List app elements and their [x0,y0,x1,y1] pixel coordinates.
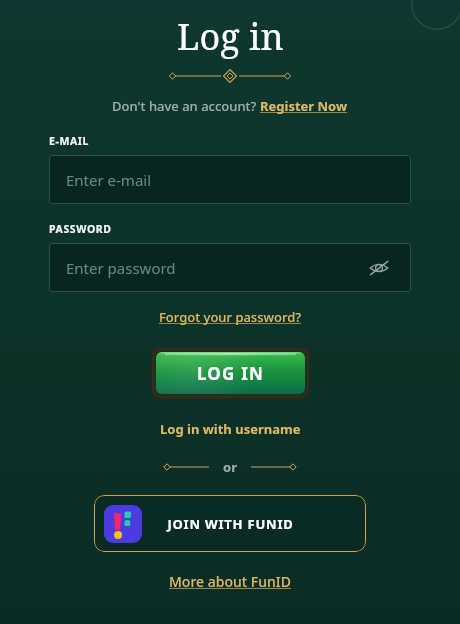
button[interactable]: Forgot your password? [155,304,306,330]
staticText: Register Now [260,97,348,115]
button[interactable]: LOG IN [156,352,305,394]
button[interactable]: Show password [364,253,394,283]
button[interactable]: Log in with username [156,416,305,442]
staticText: PASSWORD [49,222,112,236]
staticText: Log in [177,12,284,61]
staticText: Enter e-mail [66,170,152,190]
staticText: Log in with username [160,420,301,438]
button[interactable]: Register Now [260,97,348,115]
staticText: Enter password [66,258,176,278]
staticText: JOIN WITH FUNID [167,515,294,533]
staticText: or [223,458,237,476]
button[interactable]: Enter e-mail [49,155,411,204]
staticText: More about FunID [169,572,291,591]
staticText: Don't have an account? [112,97,260,115]
button[interactable]: Enter password [49,243,411,292]
button[interactable]: More about FunID [165,568,295,595]
staticText: Forgot your password? [159,308,302,326]
staticText: E-MAIL [49,134,89,148]
button[interactable]: JOIN WITH FUNID [94,495,366,552]
staticText: LOG IN [197,362,264,385]
